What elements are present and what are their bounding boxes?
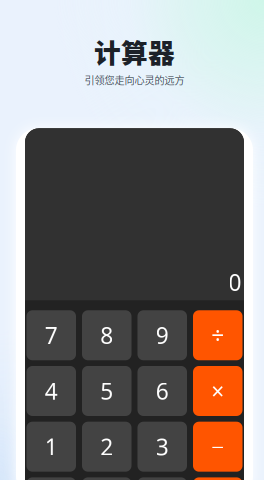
staticText: 计算器 bbox=[94, 32, 175, 71]
staticText: 6 bbox=[156, 376, 169, 406]
staticText: × bbox=[211, 376, 224, 406]
staticText: 1 bbox=[45, 432, 58, 462]
staticText: 4 bbox=[45, 376, 58, 406]
button[interactable]: 9 bbox=[137, 310, 187, 360]
button[interactable]: ÷ bbox=[193, 310, 242, 360]
button[interactable]: 4 bbox=[26, 366, 76, 416]
button[interactable]: 3 bbox=[137, 422, 187, 472]
button[interactable]: 8 bbox=[82, 310, 131, 360]
staticText: 2 bbox=[100, 432, 113, 462]
button[interactable]: 1 bbox=[26, 422, 76, 472]
button[interactable]: 0 bbox=[26, 477, 76, 480]
staticText: 9 bbox=[156, 320, 169, 350]
staticText: − bbox=[211, 432, 224, 462]
button[interactable]: . bbox=[82, 477, 131, 480]
staticText: 引领您走向心灵的远方 bbox=[84, 73, 184, 87]
staticText: 3 bbox=[156, 432, 169, 462]
button[interactable]: 5 bbox=[82, 366, 131, 416]
staticText: 7 bbox=[45, 320, 58, 350]
button[interactable]: = bbox=[137, 477, 187, 480]
staticText: ÷ bbox=[211, 320, 224, 350]
staticText: 0 bbox=[228, 267, 241, 297]
button[interactable]: − bbox=[193, 422, 242, 472]
staticText: 5 bbox=[100, 376, 113, 406]
staticText: 8 bbox=[100, 320, 113, 350]
button[interactable]: + bbox=[193, 477, 242, 480]
button[interactable]: 2 bbox=[82, 422, 131, 472]
button[interactable]: 6 bbox=[137, 366, 187, 416]
button[interactable]: 7 bbox=[26, 310, 76, 360]
button[interactable]: × bbox=[193, 366, 242, 416]
